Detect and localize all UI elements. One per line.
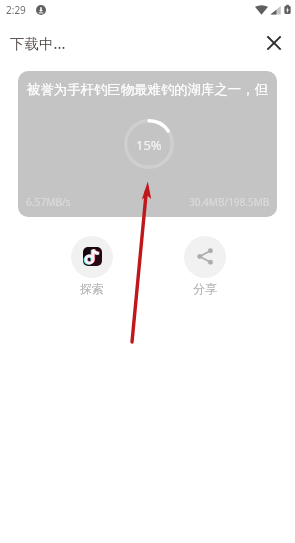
staticText: 下载中... [10, 33, 66, 53]
button[interactable]: Close [260, 29, 288, 57]
staticText: 分享 [193, 281, 217, 296]
button[interactable]: 探索 [71, 236, 113, 296]
staticText: 15% [136, 136, 162, 154]
staticText: 30.4MB/198.5MB [189, 195, 270, 209]
staticText: 2:29 [6, 3, 26, 17]
staticText: 探索 [80, 281, 104, 296]
button[interactable]: 被誉为手杆钓巨物最难钓的湖库之一，但 [18, 71, 277, 217]
staticText: 被誉为手杆钓巨物最难钓的湖库之一，但 [27, 81, 269, 98]
button[interactable]: 分享 [184, 236, 226, 296]
staticText: 6.57MB/s [26, 195, 71, 209]
